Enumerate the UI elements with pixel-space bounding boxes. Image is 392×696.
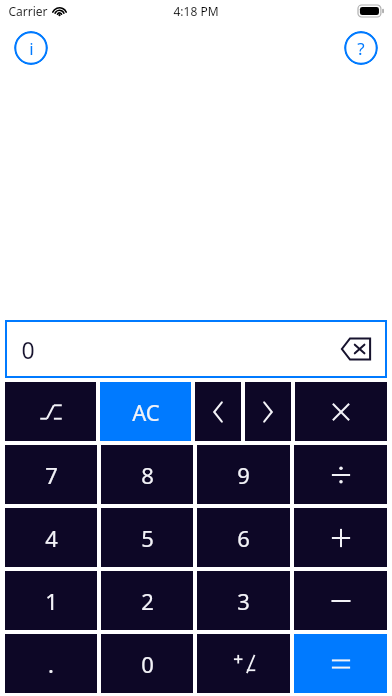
button[interactable]: 6 bbox=[197, 508, 290, 567]
button[interactable]: 4 bbox=[5, 508, 97, 567]
staticText: 4 bbox=[45, 523, 58, 553]
button[interactable]: 3 bbox=[197, 571, 290, 630]
button[interactable]: Help bbox=[344, 31, 378, 65]
staticText: 2 bbox=[141, 586, 154, 616]
staticText: 5 bbox=[141, 523, 154, 553]
staticText: . bbox=[48, 649, 54, 679]
staticText: 4:18 PM bbox=[173, 3, 219, 19]
staticText: ? bbox=[357, 37, 365, 60]
button[interactable]: Add bbox=[294, 508, 387, 567]
staticText: 3 bbox=[237, 586, 250, 616]
staticText: 9 bbox=[237, 460, 250, 490]
staticText: i bbox=[29, 37, 34, 60]
staticText: 6 bbox=[237, 523, 250, 553]
button[interactable]: Close parenthesis bbox=[245, 382, 291, 441]
button[interactable]: 5 bbox=[101, 508, 193, 567]
staticText: 8 bbox=[141, 460, 154, 490]
button[interactable]: Step function bbox=[5, 382, 96, 441]
button[interactable]: 0 bbox=[5, 320, 387, 378]
button[interactable]: Open parenthesis bbox=[195, 382, 241, 441]
button[interactable]: 2 bbox=[101, 571, 193, 630]
staticText: AC bbox=[132, 397, 160, 427]
staticText: 1 bbox=[45, 586, 58, 616]
button[interactable]: Subtract bbox=[294, 571, 387, 630]
button[interactable]: AC bbox=[100, 382, 191, 441]
button[interactable]: Multiply bbox=[295, 382, 387, 441]
button[interactable]: 0 bbox=[101, 634, 193, 693]
button[interactable]: Backspace bbox=[339, 336, 373, 362]
staticText: 0 bbox=[21, 334, 35, 365]
button[interactable]: Toggle sign bbox=[197, 634, 290, 693]
button[interactable]: 7 bbox=[5, 445, 97, 504]
button[interactable]: . bbox=[5, 634, 97, 693]
staticText: 7 bbox=[45, 460, 58, 490]
button[interactable]: 8 bbox=[101, 445, 193, 504]
button[interactable]: 9 bbox=[197, 445, 290, 504]
button[interactable]: Equals bbox=[294, 634, 387, 693]
staticText: 0 bbox=[141, 649, 154, 679]
button[interactable]: Divide bbox=[294, 445, 387, 504]
button[interactable]: Information bbox=[14, 31, 48, 65]
staticText: Carrier bbox=[8, 3, 48, 19]
button[interactable]: 1 bbox=[5, 571, 97, 630]
